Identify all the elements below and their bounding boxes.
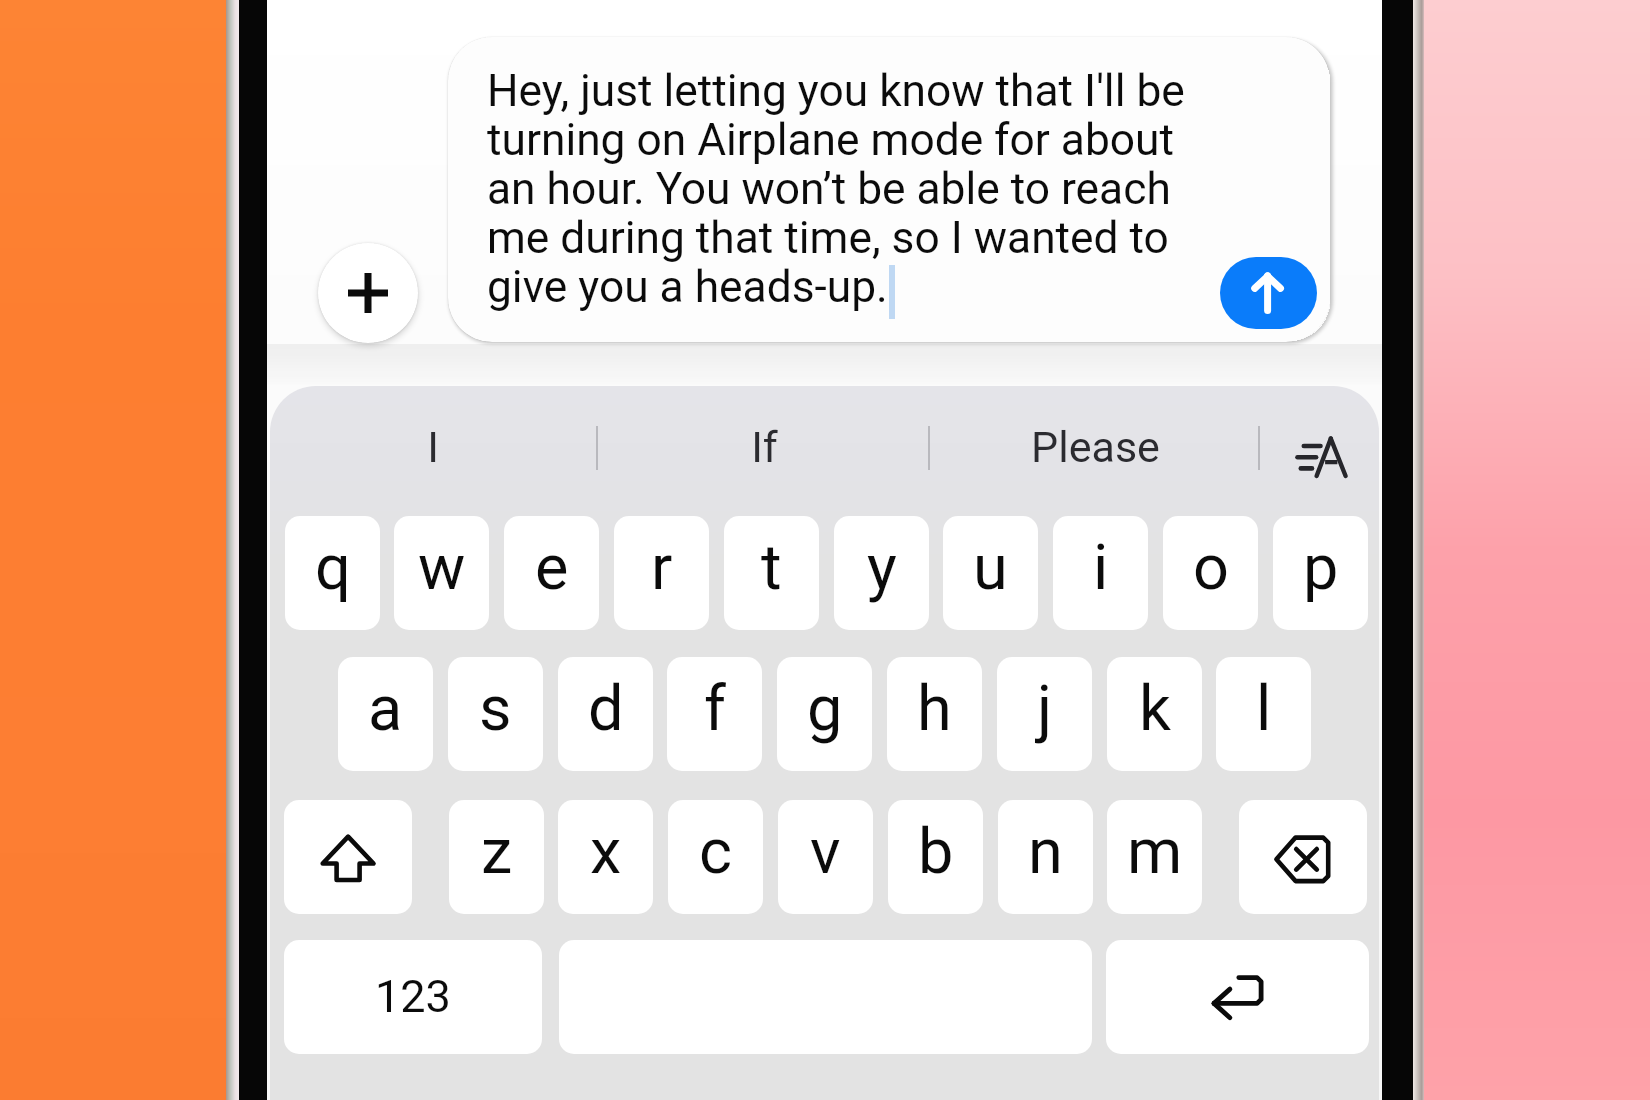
button[interactable]: z (449, 800, 544, 914)
button[interactable]: o (1163, 516, 1258, 630)
staticText: i (1093, 531, 1109, 605)
button[interactable]: w (394, 516, 489, 630)
staticText: c (699, 815, 732, 889)
staticText: b (918, 815, 954, 889)
button[interactable]: Hey, just letting you know that I'll be … (448, 37, 1330, 342)
button[interactable]: x (558, 800, 653, 914)
button[interactable]: u (943, 516, 1038, 630)
staticText: t (761, 531, 782, 605)
button[interactable]: b (888, 800, 983, 914)
button[interactable]: p (1273, 516, 1368, 630)
staticText: f (704, 672, 726, 746)
staticText: g (807, 672, 843, 746)
staticText: k (1139, 672, 1171, 746)
staticText: a (368, 672, 403, 746)
staticText: v (810, 815, 841, 889)
button[interactable]: y (834, 516, 929, 630)
staticText: z (481, 815, 513, 889)
staticText: h (917, 672, 952, 746)
staticText: Hey, just letting you know that I'll be … (487, 65, 1199, 313)
button[interactable]: r (614, 516, 709, 630)
button[interactable]: 123 (284, 940, 542, 1054)
staticText: y (867, 531, 897, 605)
staticText: n (1028, 815, 1063, 889)
staticText: q (315, 531, 351, 605)
staticText: o (1193, 531, 1229, 605)
staticText: w (418, 531, 466, 605)
button[interactable]: Text formatting options (1295, 435, 1353, 481)
button[interactable]: l (1216, 657, 1311, 771)
button[interactable]: n (998, 800, 1093, 914)
button[interactable]: m (1107, 800, 1202, 914)
staticText: e (535, 531, 569, 605)
button[interactable]: a (338, 657, 433, 771)
button[interactable]: q (285, 516, 380, 630)
button[interactable]: Send (1220, 257, 1317, 329)
button[interactable]: If (644, 411, 884, 483)
staticText: l (1256, 672, 1272, 746)
button[interactable]: Backspace (1239, 800, 1367, 914)
staticText: m (1127, 815, 1183, 889)
button[interactable]: i (1053, 516, 1148, 630)
button[interactable]: t (724, 516, 819, 630)
staticText: j (1037, 672, 1053, 746)
staticText: r (651, 531, 673, 605)
staticText: p (1303, 531, 1339, 605)
button[interactable]: Shift (284, 800, 412, 914)
staticText: I (427, 422, 439, 472)
button[interactable]: h (887, 657, 982, 771)
staticText: If (751, 422, 778, 472)
button[interactable]: Return (1106, 940, 1369, 1054)
button[interactable]: c (668, 800, 763, 914)
button[interactable]: Please (975, 411, 1215, 483)
button[interactable]: f (667, 657, 762, 771)
staticText: 123 (375, 970, 451, 1023)
staticText: d (588, 672, 624, 746)
button[interactable]: g (777, 657, 872, 771)
button[interactable]: e (504, 516, 599, 630)
button[interactable]: s (448, 657, 543, 771)
button[interactable]: I (313, 411, 553, 483)
button[interactable]: d (558, 657, 653, 771)
staticText: Please (1031, 422, 1160, 472)
staticText: u (973, 531, 1008, 605)
button[interactable]: v (778, 800, 873, 914)
staticText: s (479, 672, 512, 746)
button[interactable]: j (997, 657, 1092, 771)
staticText: x (590, 815, 622, 889)
button[interactable]: k (1107, 657, 1202, 771)
button[interactable]: Add attachment (318, 243, 418, 343)
